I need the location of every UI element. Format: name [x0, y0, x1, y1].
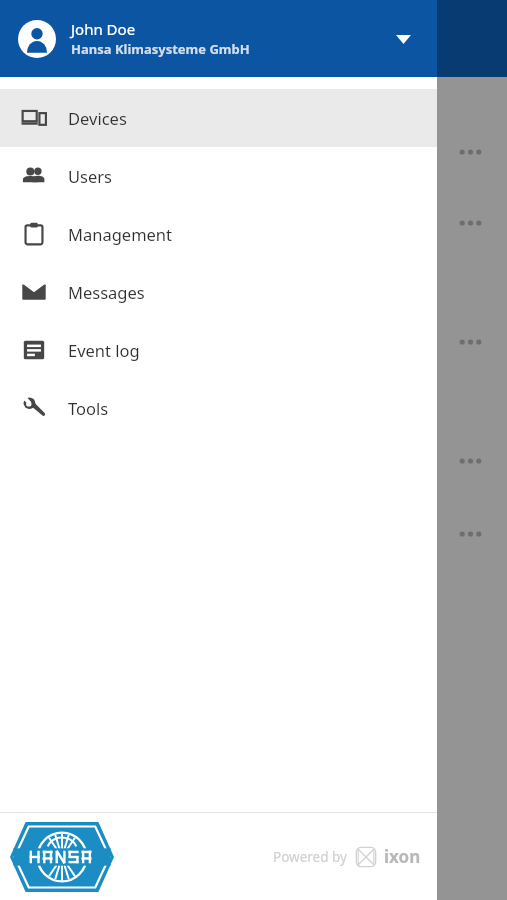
- button[interactable]: Row options: [448, 328, 492, 356]
- button[interactable]: Row options: [448, 447, 492, 475]
- button[interactable]: John Doe: [0, 0, 437, 77]
- button[interactable]: Row options: [448, 209, 492, 237]
- button[interactable]: Row options: [448, 520, 492, 548]
- button[interactable]: Event log: [0, 321, 437, 379]
- staticText: Messages: [68, 281, 145, 303]
- button[interactable]: Powered by: [269, 841, 425, 872]
- staticText: Devices: [68, 107, 127, 129]
- button[interactable]: Switch company: [383, 19, 423, 59]
- staticText: Event log: [68, 339, 140, 361]
- button[interactable]: Management: [0, 205, 437, 263]
- button[interactable]: Users: [0, 147, 437, 205]
- staticText: John Doe: [71, 19, 136, 39]
- staticText: Hansa Klimasysteme GmbH: [71, 40, 250, 58]
- button[interactable]: Tools: [0, 379, 437, 437]
- staticText: Powered by: [273, 848, 347, 866]
- staticText: Management: [68, 223, 173, 245]
- button[interactable]: Devices: [0, 89, 437, 147]
- staticText: Users: [68, 165, 112, 187]
- button[interactable]: Hansa: [8, 820, 116, 894]
- button[interactable]: Row options: [448, 138, 492, 166]
- button[interactable]: Messages: [0, 263, 437, 321]
- staticText: ixon: [384, 845, 421, 868]
- staticText: Tools: [68, 397, 109, 419]
